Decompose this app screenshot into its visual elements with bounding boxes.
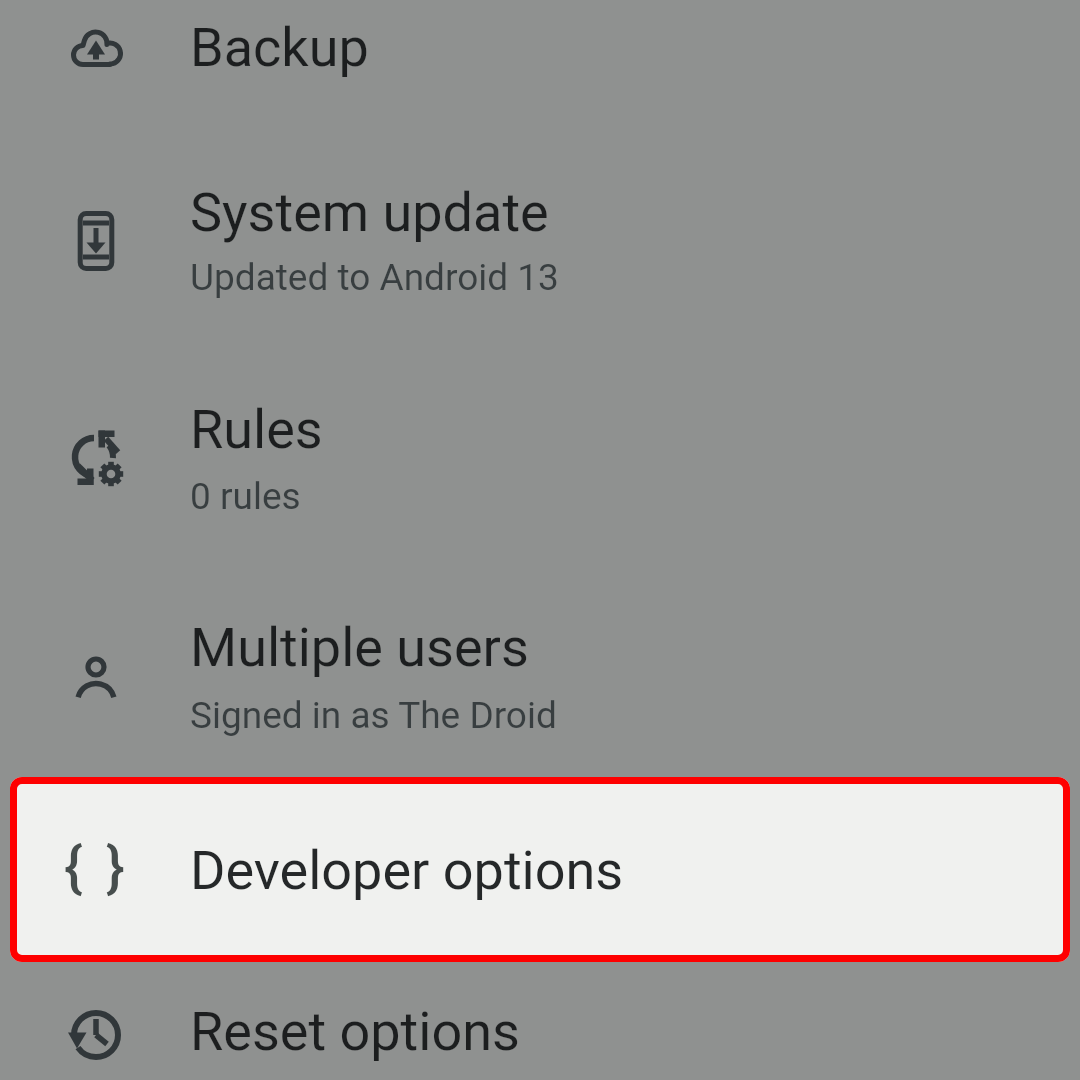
button[interactable] [10,777,1070,962]
button[interactable] [0,136,1080,354]
staticText: Updated to Android 13 [190,256,559,299]
staticText: Rules [190,398,323,461]
button[interactable] [0,572,1080,790]
button[interactable] [0,0,1080,122]
staticText: } [106,834,125,900]
staticText: Signed in as The Droid [190,694,557,737]
staticText: Backup [190,16,369,79]
button[interactable] [0,354,1080,572]
staticText: Developer options [190,839,624,902]
button[interactable] [0,958,1080,1080]
staticText: Reset options [190,1000,520,1063]
staticText: { [64,834,83,900]
staticText: Multiple users [190,616,529,679]
staticText: System update [190,181,549,244]
staticText: 0 rules [190,475,301,518]
